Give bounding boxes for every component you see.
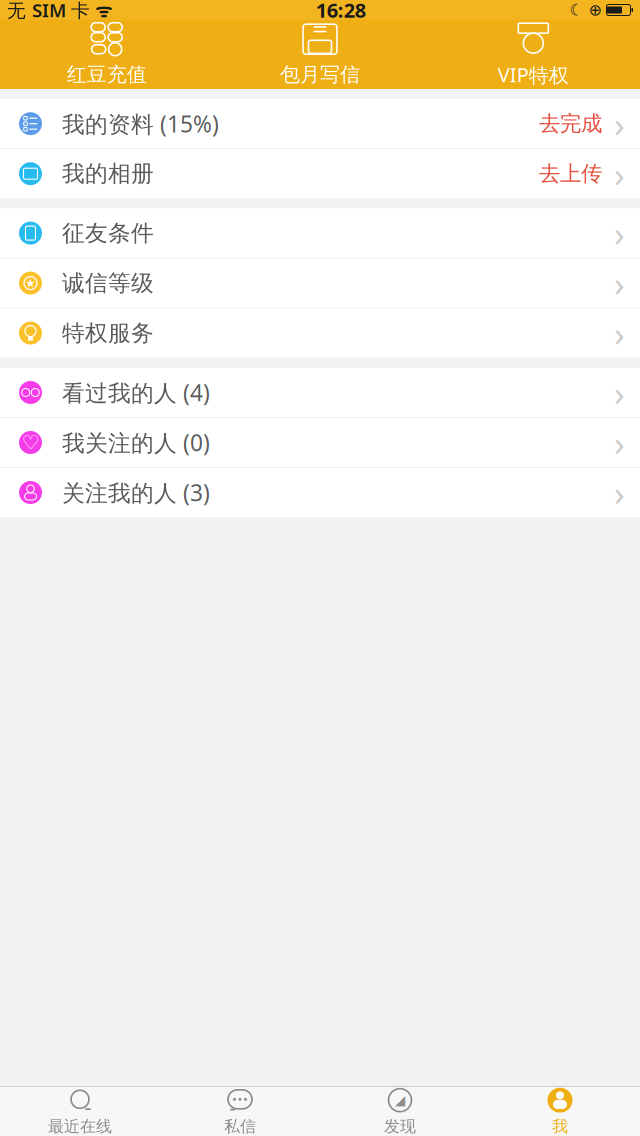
- staticText: 最近在线: [48, 1117, 112, 1136]
- staticText: 关注我的人 (3): [62, 477, 210, 507]
- staticText: 我关注的人 (0): [62, 427, 210, 457]
- staticText: ◢: [395, 1093, 405, 1108]
- staticText: 征友条件: [62, 219, 154, 247]
- button[interactable]: VIP特权: [427, 12, 640, 97]
- staticText: ›: [614, 210, 625, 256]
- staticText: 我: [552, 1117, 568, 1136]
- staticText: 诚信等级: [62, 269, 154, 297]
- staticText: 去上传: [539, 161, 602, 187]
- staticText: ♡: [21, 431, 39, 454]
- staticText: 包月写信: [280, 62, 360, 87]
- staticText: ⊕: [583, 1, 601, 19]
- staticText: ›: [614, 310, 625, 356]
- staticText: 16:28: [316, 0, 366, 23]
- staticText: 我的相册: [62, 160, 154, 188]
- staticText: 无 SIM 卡: [7, 0, 90, 22]
- staticText: ›: [614, 260, 625, 306]
- button[interactable]: ★: [0, 258, 640, 308]
- button[interactable]: 看过我的人 (4): [0, 368, 640, 418]
- staticText: ☾: [569, 1, 583, 19]
- staticText: ★: [25, 276, 36, 290]
- button[interactable]: ◢: [320, 1083, 480, 1136]
- button[interactable]: 特权服务: [0, 308, 640, 358]
- staticText: ›: [614, 469, 625, 515]
- button[interactable]: 私信: [160, 1083, 320, 1136]
- button[interactable]: 红豆充值: [0, 13, 213, 96]
- staticText: ›: [614, 101, 625, 147]
- staticText: 看过我的人 (4): [62, 377, 210, 407]
- button[interactable]: 我的资料 (15%): [0, 99, 640, 149]
- button[interactable]: 征友条件: [0, 208, 640, 258]
- staticText: ›: [614, 369, 625, 415]
- button[interactable]: 我: [480, 1083, 640, 1136]
- button[interactable]: 我的相册: [0, 149, 640, 198]
- staticText: 去完成: [539, 111, 602, 137]
- button[interactable]: ♡: [0, 418, 640, 468]
- staticText: ›: [614, 419, 625, 465]
- staticText: 发现: [384, 1117, 416, 1136]
- staticText: ᯤ: [90, 0, 112, 22]
- button[interactable]: 包月写信: [213, 13, 427, 96]
- staticText: VIP特权: [498, 61, 569, 88]
- staticText: 特权服务: [62, 319, 154, 347]
- button[interactable]: 关注我的人 (3): [0, 468, 640, 517]
- staticText: 红豆充值: [67, 62, 147, 87]
- staticText: 我的资料 (15%): [62, 109, 219, 139]
- staticText: ›: [614, 151, 625, 197]
- staticText: 私信: [224, 1117, 256, 1136]
- button[interactable]: 最近在线: [0, 1083, 160, 1136]
